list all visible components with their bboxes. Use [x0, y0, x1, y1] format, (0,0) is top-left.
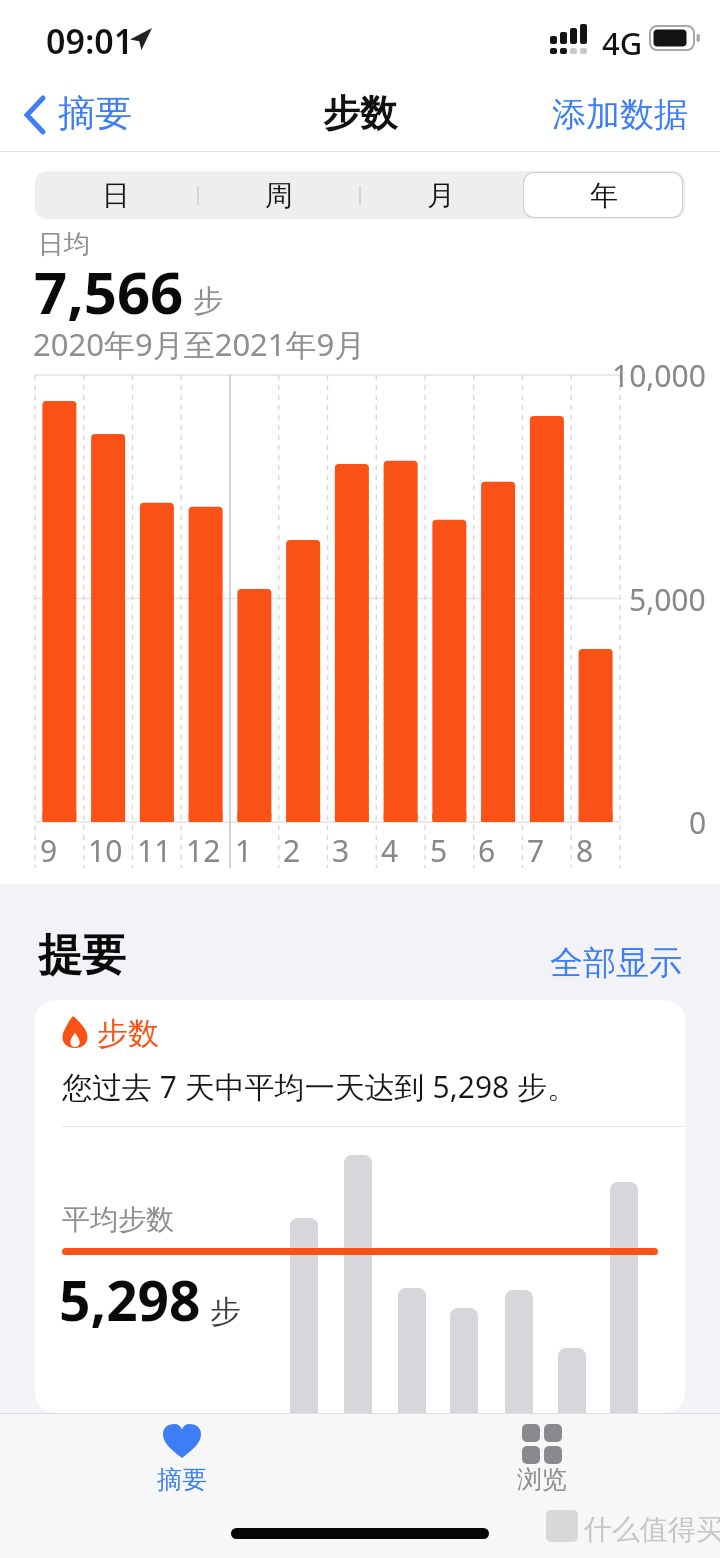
staticText: 浏览	[517, 1464, 567, 1495]
staticText: 0	[689, 802, 707, 843]
staticText: 4	[381, 830, 399, 871]
button[interactable]: 添加数据	[0, 0, 136, 43]
button[interactable]: 浏览	[497, 1415, 587, 1505]
button[interactable]: 摘要	[140, 1415, 230, 1505]
staticText: 步	[210, 1292, 241, 1331]
staticText: 您过去 7 天中平均一天达到 5,298 步。	[62, 1066, 578, 1107]
staticText: 月	[427, 178, 455, 213]
staticText: 步数	[97, 1014, 159, 1053]
staticText: 平均步数	[62, 1202, 174, 1237]
staticText: 7,566	[34, 252, 184, 331]
staticText: 摘要	[58, 90, 132, 137]
button[interactable]: 步数	[35, 1000, 685, 1413]
staticText: 11	[137, 830, 172, 871]
staticText: 2020年9月至2021年9月	[33, 323, 366, 365]
button[interactable]: 周	[198, 171, 360, 219]
staticText: 6	[478, 830, 496, 871]
staticText: 年	[590, 178, 618, 213]
staticText: 5,298	[59, 1262, 201, 1337]
staticText: 什么值得买	[584, 1512, 720, 1547]
staticText: 周	[265, 178, 293, 213]
staticText: 8	[576, 830, 594, 871]
staticText: 1	[235, 830, 253, 871]
staticText: 提要	[38, 928, 126, 983]
staticText: 10,000	[612, 355, 706, 396]
staticText: 7	[527, 830, 545, 871]
staticText: 步数	[323, 90, 397, 137]
staticText: 12	[186, 830, 221, 871]
staticText: 摘要	[157, 1464, 207, 1495]
staticText: 09:01	[46, 18, 134, 64]
staticText: 3	[332, 830, 350, 871]
staticText: 5	[430, 830, 448, 871]
button[interactable]: 年	[523, 171, 685, 219]
button[interactable]: 全部显示	[0, 0, 132, 42]
staticText: 9	[40, 830, 58, 871]
staticText: 步	[193, 282, 223, 320]
button[interactable]: 月	[360, 171, 522, 219]
button[interactable]: 日	[35, 171, 197, 219]
button[interactable]: 摘要	[18, 86, 148, 142]
staticText: 4G	[602, 22, 643, 64]
staticText: 日均	[38, 228, 90, 261]
staticText: 2	[283, 830, 301, 871]
staticText: 10	[88, 830, 123, 871]
staticText: 5,000	[629, 579, 706, 620]
staticText: 日	[102, 178, 130, 213]
